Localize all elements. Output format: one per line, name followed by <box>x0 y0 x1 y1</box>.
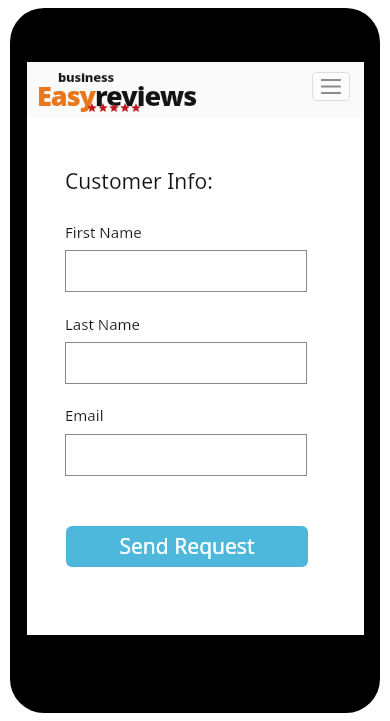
staticText: business <box>58 68 114 86</box>
button[interactable]: First Name <box>65 250 307 292</box>
button[interactable]: Open menu <box>312 72 350 101</box>
staticText: reviews <box>95 77 197 114</box>
staticText: First Name <box>65 222 142 242</box>
button[interactable]: Send Request <box>66 526 308 567</box>
button[interactable]: Email <box>65 434 307 476</box>
staticText: Email <box>65 405 104 425</box>
staticText: Last Name <box>65 314 141 334</box>
staticText: Customer Info: <box>65 167 213 196</box>
button[interactable]: Last Name <box>65 342 307 384</box>
staticText: Easy <box>37 77 96 114</box>
staticText: Send Request <box>119 532 255 561</box>
